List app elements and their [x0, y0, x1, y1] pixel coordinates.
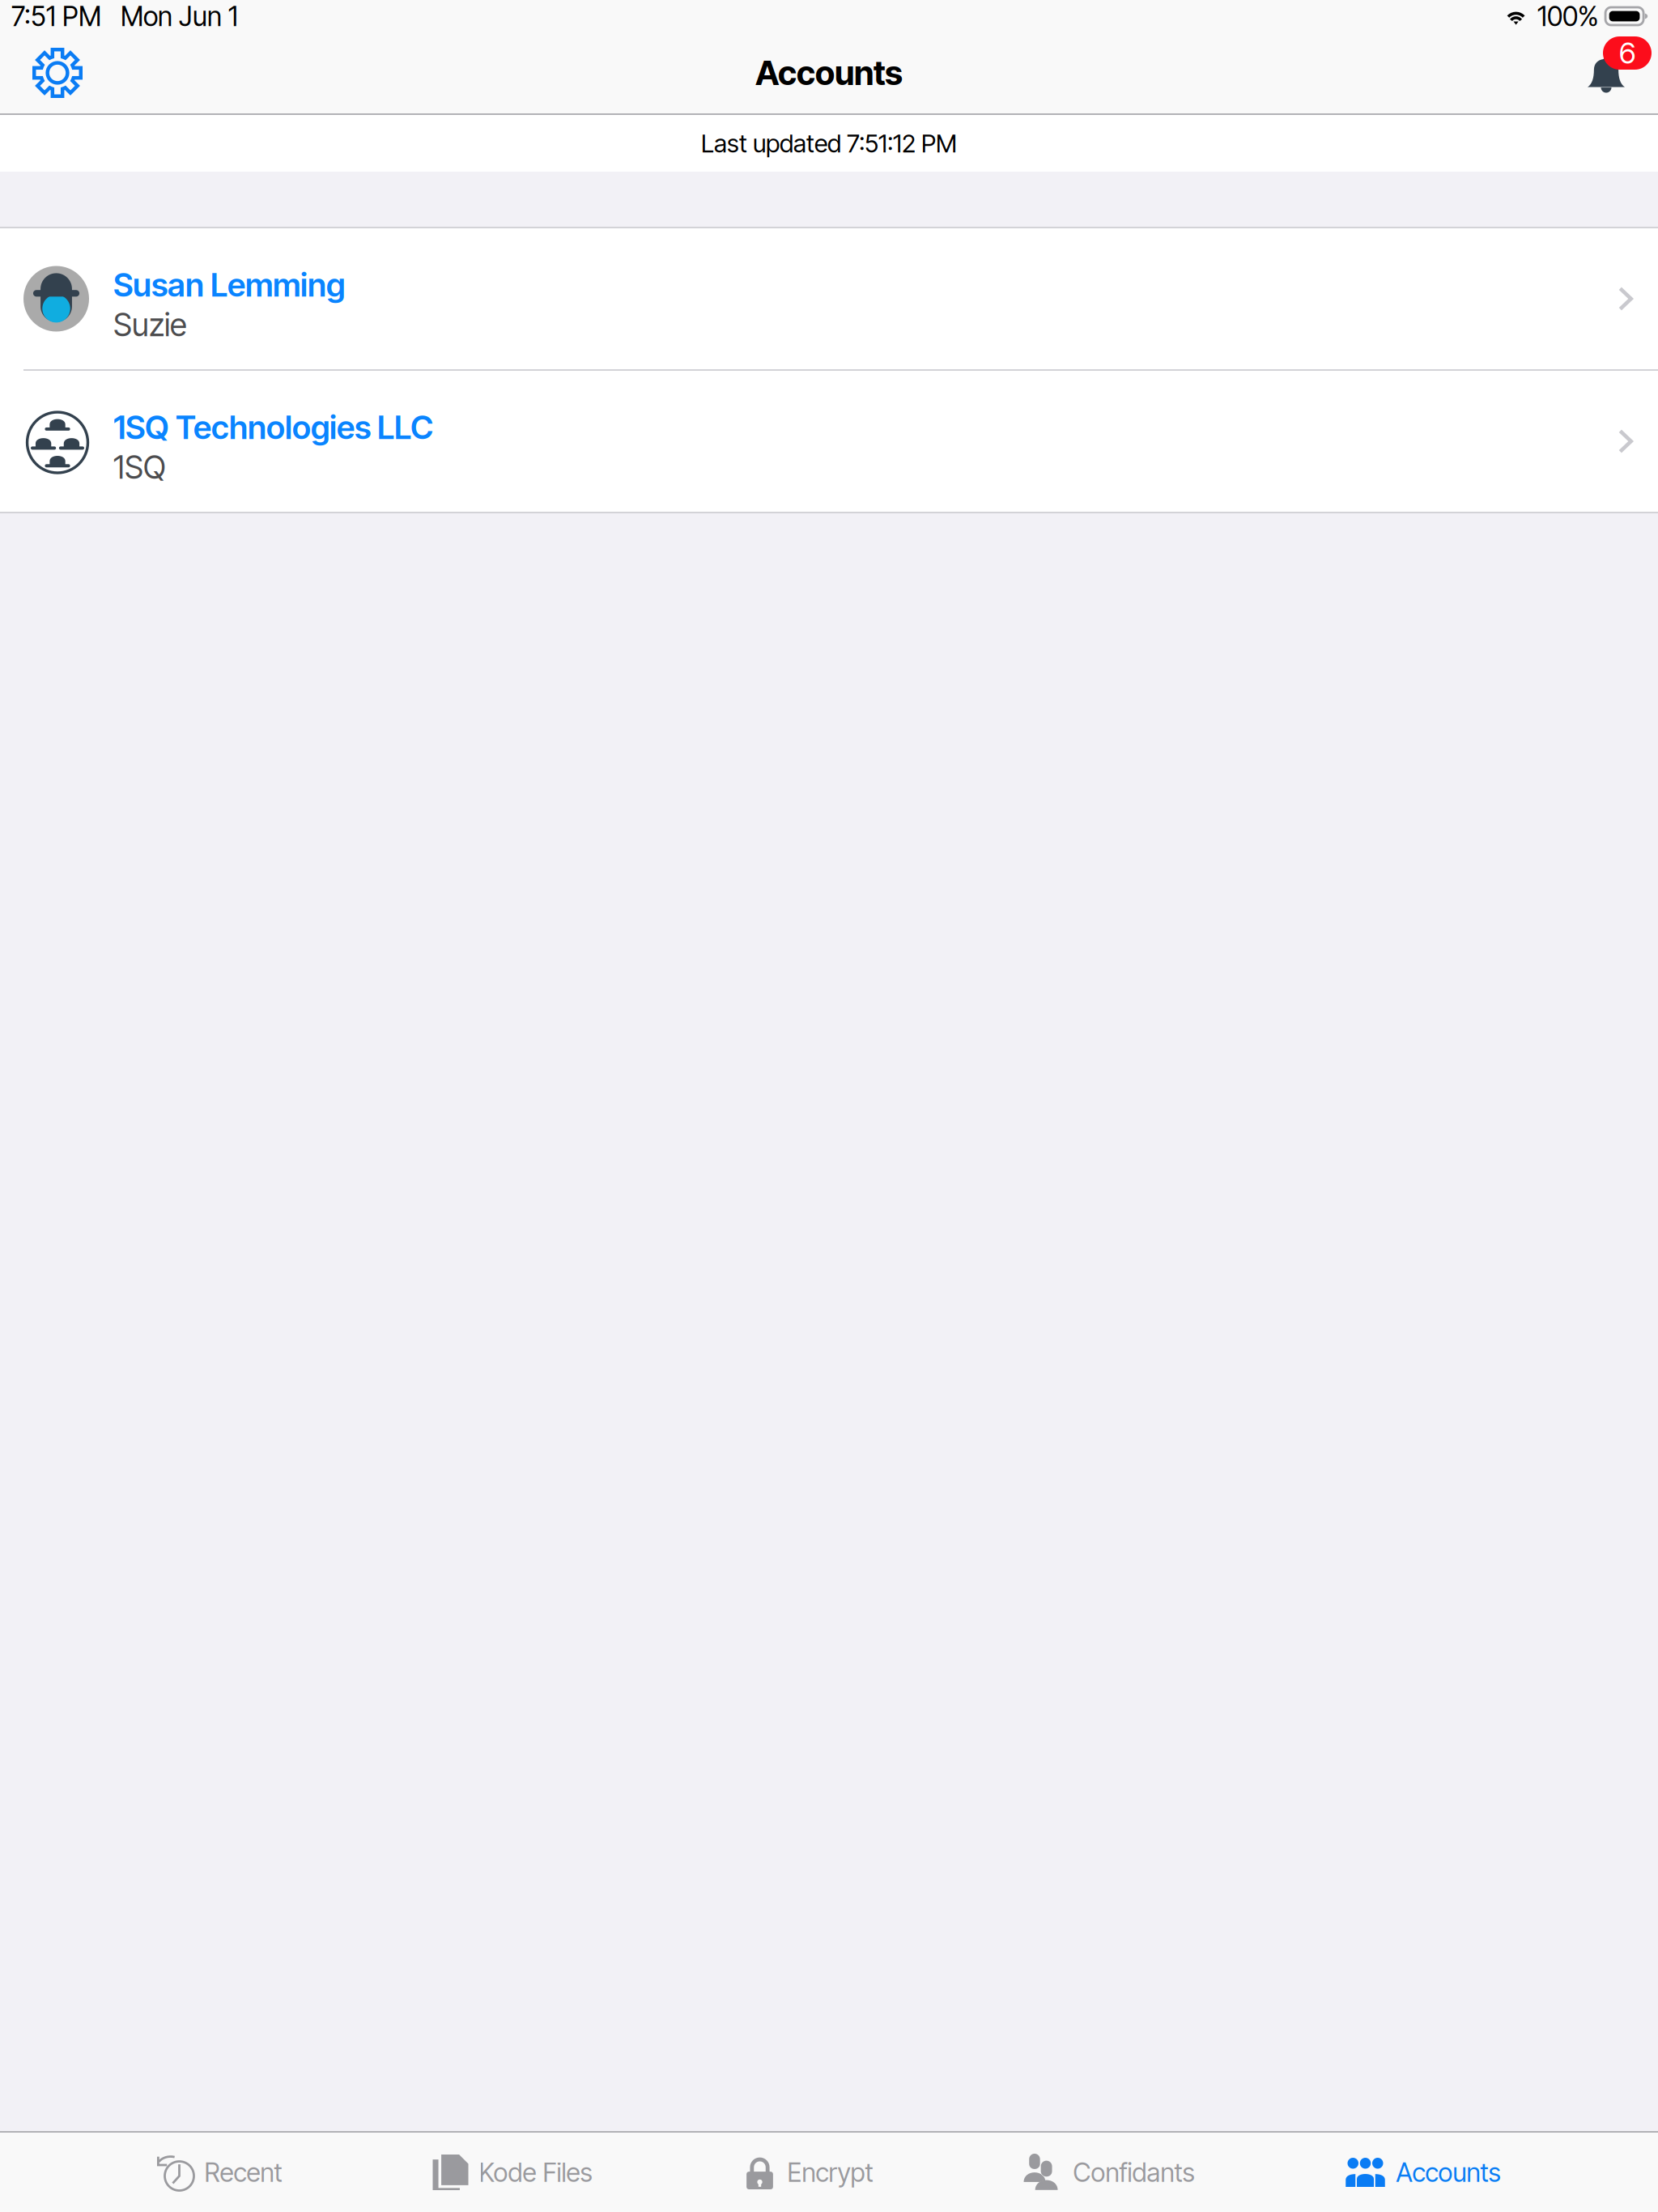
- button[interactable]: 1SQ Technologies LLC: [0, 371, 1658, 512]
- button[interactable]: Notifications: [1587, 32, 1658, 113]
- button[interactable]: Confidants: [1024, 2133, 1195, 2212]
- button[interactable]: Encrypt: [743, 2133, 873, 2212]
- staticText: Recent: [204, 2157, 282, 2188]
- staticText: Encrypt: [787, 2157, 873, 2188]
- staticText: Kode Files: [479, 2157, 592, 2188]
- staticText: 1SQ Technologies LLC: [113, 408, 433, 447]
- button[interactable]: Susan Lemming: [0, 228, 1658, 369]
- staticText: Confidants: [1073, 2157, 1195, 2188]
- button[interactable]: Accounts: [1345, 2133, 1501, 2212]
- staticText: Mon Jun 1: [121, 0, 238, 32]
- staticText: Susan Lemming: [113, 265, 345, 304]
- staticText: 100%: [1537, 0, 1599, 32]
- staticText: Last updated 7:51:12 PM: [701, 128, 957, 158]
- staticText: 1SQ: [113, 448, 166, 486]
- button[interactable]: Kode Files: [433, 2133, 592, 2212]
- button[interactable]: Settings: [16, 32, 99, 113]
- staticText: Accounts: [755, 53, 903, 93]
- staticText: 6: [1619, 35, 1635, 71]
- staticText: Suzie: [113, 306, 187, 344]
- staticText: Accounts: [1396, 2157, 1501, 2188]
- staticText: 7:51 PM: [11, 0, 101, 32]
- button[interactable]: Recent: [157, 2133, 282, 2212]
